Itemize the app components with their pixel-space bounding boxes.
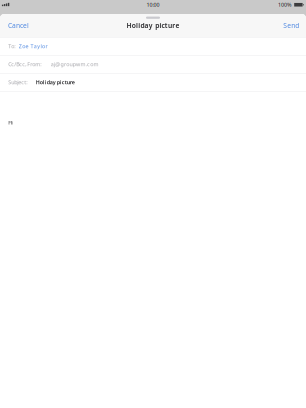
staticText: Zoe Taylor (19, 43, 47, 50)
staticText: aj@groupwm.com (51, 61, 99, 68)
staticText: Cancel (8, 21, 29, 30)
staticText: Send (283, 21, 299, 30)
staticText: 10:00 (146, 1, 159, 8)
staticText: Holiday picture (36, 79, 75, 86)
button[interactable]: Send (275, 14, 306, 37)
staticText: Cc/Bcc, From: (8, 61, 41, 68)
staticText: 100% (278, 1, 292, 8)
button[interactable]: Subject: (0, 73, 306, 91)
staticText: Subject: (8, 79, 27, 86)
staticText: Holiday picture (127, 21, 179, 30)
staticText: Hi (8, 119, 13, 126)
button[interactable]: To: (0, 37, 306, 55)
staticText: To: (8, 43, 15, 50)
button[interactable]: Cc/Bcc, From: (0, 55, 306, 73)
button[interactable]: Cancel (0, 14, 37, 37)
